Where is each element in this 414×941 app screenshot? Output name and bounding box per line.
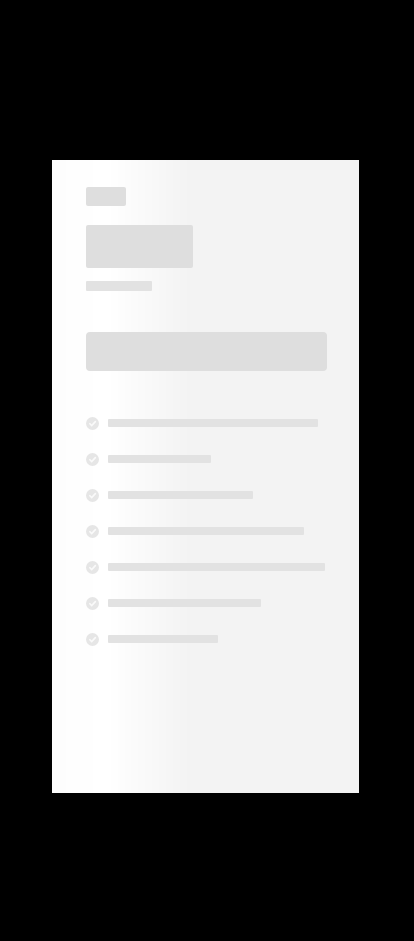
button[interactable]: Completed item	[86, 448, 211, 470]
other: Completed item	[86, 453, 99, 466]
button[interactable]: Completed item	[86, 520, 304, 542]
other: Completed item	[86, 525, 99, 538]
other: Completed item	[86, 597, 99, 610]
button[interactable]: Completed item	[86, 484, 253, 506]
other: Completed item	[86, 489, 99, 502]
button[interactable]: Completed item	[86, 628, 218, 650]
button[interactable]: Completed item	[86, 556, 325, 578]
other: Completed item	[86, 561, 99, 574]
other: Completed item	[86, 417, 99, 430]
other: Completed item	[86, 633, 99, 646]
button[interactable]: Completed item	[86, 592, 261, 614]
button[interactable]: Completed item	[86, 412, 318, 434]
